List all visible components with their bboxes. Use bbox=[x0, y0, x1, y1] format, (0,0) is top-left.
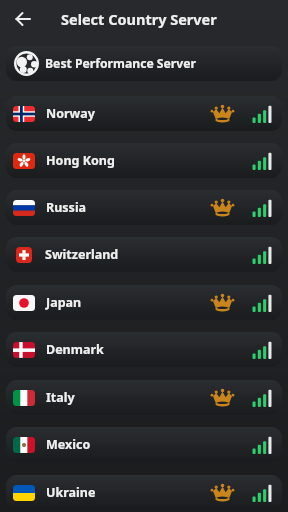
staticText: Hong Kong bbox=[46, 152, 115, 169]
staticText: Italy bbox=[46, 389, 75, 406]
button[interactable]: Japan bbox=[6, 285, 282, 320]
staticText: Select Country Server bbox=[61, 9, 217, 29]
staticText: Denmark bbox=[46, 341, 104, 358]
button[interactable]: Switzerland bbox=[6, 237, 282, 272]
staticText: Norway bbox=[46, 105, 95, 122]
button[interactable]: Russia bbox=[6, 190, 282, 225]
button[interactable] bbox=[12, 8, 34, 30]
staticText: Mexico bbox=[46, 436, 91, 453]
button[interactable]: Denmark bbox=[6, 332, 282, 367]
staticText: Best Performance Server bbox=[45, 55, 196, 72]
staticText: Ukraine bbox=[46, 484, 96, 501]
staticText: Russia bbox=[46, 199, 87, 216]
button[interactable]: Hong Kong bbox=[6, 143, 282, 178]
button[interactable]: Norway bbox=[6, 96, 282, 131]
button[interactable]: Mexico bbox=[6, 427, 282, 462]
staticText: Japan bbox=[46, 294, 82, 311]
button[interactable]: Ukraine bbox=[6, 475, 282, 510]
button[interactable]: Italy bbox=[6, 380, 282, 415]
button[interactable]: Best Performance Server bbox=[6, 46, 282, 81]
staticText: Switzerland bbox=[45, 246, 119, 263]
